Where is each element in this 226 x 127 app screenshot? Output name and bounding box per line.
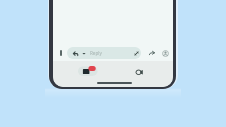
button[interactable]: Reply xyxy=(67,47,141,59)
button[interactable]: Forward xyxy=(148,49,156,57)
button[interactable]: Attach file xyxy=(57,48,65,57)
button[interactable]: Mail xyxy=(77,64,99,78)
button[interactable]: Meet xyxy=(130,64,150,78)
button[interactable]: Expand xyxy=(132,49,140,57)
staticText: Reply xyxy=(90,50,102,56)
button[interactable]: Account xyxy=(162,50,169,57)
